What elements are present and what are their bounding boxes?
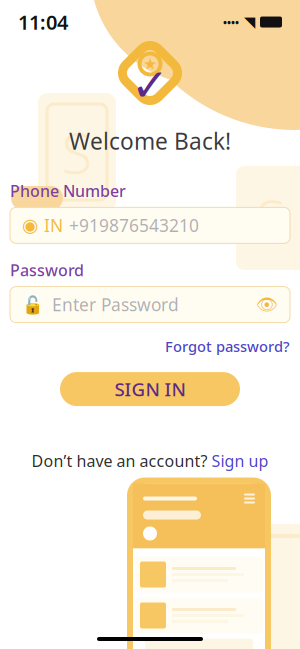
staticText: S	[61, 115, 92, 189]
staticText: ◥	[244, 14, 255, 30]
staticText: Sign up	[211, 450, 268, 471]
staticText: SIGN IN	[114, 377, 185, 401]
staticText: 11:04	[18, 9, 68, 35]
staticText: Phone Number	[10, 180, 126, 201]
staticText: ◉	[22, 215, 38, 236]
button[interactable]: Show password	[256, 294, 278, 316]
staticText: ••••	[223, 15, 239, 29]
staticText: S	[256, 183, 285, 253]
staticText: 👁	[256, 295, 278, 314]
button[interactable]: SIGN IN	[60, 372, 240, 406]
button[interactable]: Sign up	[211, 450, 268, 471]
staticText: ★	[143, 55, 157, 73]
staticText: Forgot password?	[165, 337, 290, 356]
staticText: 🔓	[22, 295, 44, 314]
staticText: Password	[10, 259, 84, 280]
button[interactable]: Forgot password?	[165, 333, 290, 360]
staticText: IN	[44, 214, 63, 237]
staticText: Don’t have an account?	[31, 450, 207, 471]
staticText: Welcome Back!	[69, 126, 231, 156]
staticText: +919876543210	[69, 214, 199, 237]
staticText: ✓	[131, 59, 169, 111]
staticText: Enter Password	[52, 293, 179, 316]
